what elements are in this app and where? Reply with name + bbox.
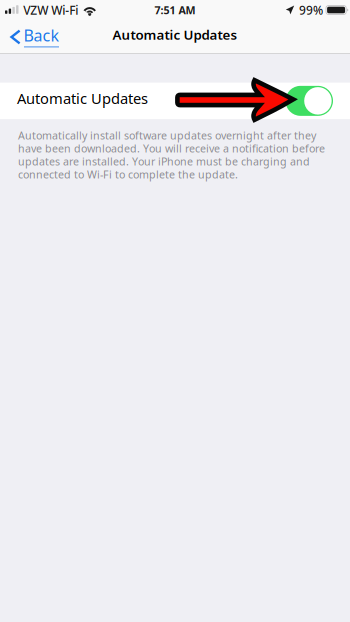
staticText: Automatic Updates <box>17 89 148 108</box>
staticText: Back <box>23 25 59 46</box>
staticText: 99% <box>299 2 323 18</box>
staticText: VZW Wi-Fi <box>23 2 78 18</box>
staticText: Automatic Updates <box>112 26 237 43</box>
staticText: have been downloaded. You will receive a… <box>18 141 325 156</box>
staticText: Automatically install software updates o… <box>18 128 316 143</box>
staticText: connected to Wi-Fi to complete the updat… <box>18 167 238 181</box>
button[interactable]: Back <box>0 20 65 54</box>
button[interactable]: Automatic Updates <box>0 83 350 119</box>
staticText: updates are installed. Your iPhone must … <box>18 154 310 168</box>
staticText: 7:51 AM <box>154 3 195 17</box>
